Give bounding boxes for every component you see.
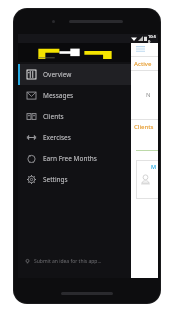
button[interactable]: Settings xyxy=(18,169,131,190)
staticText: Clients Over xyxy=(134,123,158,131)
staticText: Exercises xyxy=(43,133,71,142)
staticText: Earn Free Months xyxy=(43,154,97,163)
staticText: N xyxy=(146,91,151,99)
staticText: Messages xyxy=(43,91,74,100)
staticText: M xyxy=(151,163,157,170)
button[interactable]: M xyxy=(136,160,158,198)
button[interactable]: Submit an idea for this app... xyxy=(18,254,131,268)
button[interactable]: Overview xyxy=(18,64,131,85)
staticText: Active Sessi xyxy=(134,60,158,68)
button[interactable]: App logo xyxy=(18,43,131,62)
button[interactable]: Earn Free Months xyxy=(18,148,131,169)
button[interactable]: Open navigation menu xyxy=(133,43,147,56)
staticText: Settings xyxy=(43,175,68,184)
button[interactable]: Messages xyxy=(18,85,131,106)
staticText: Submit an idea for this app... xyxy=(34,258,102,265)
button[interactable]: Clients xyxy=(18,106,131,127)
staticText: Clients xyxy=(43,112,64,121)
staticText: Overview xyxy=(43,70,72,79)
staticText: 10:50 xyxy=(148,34,157,43)
button[interactable]: Exercises xyxy=(18,127,131,148)
